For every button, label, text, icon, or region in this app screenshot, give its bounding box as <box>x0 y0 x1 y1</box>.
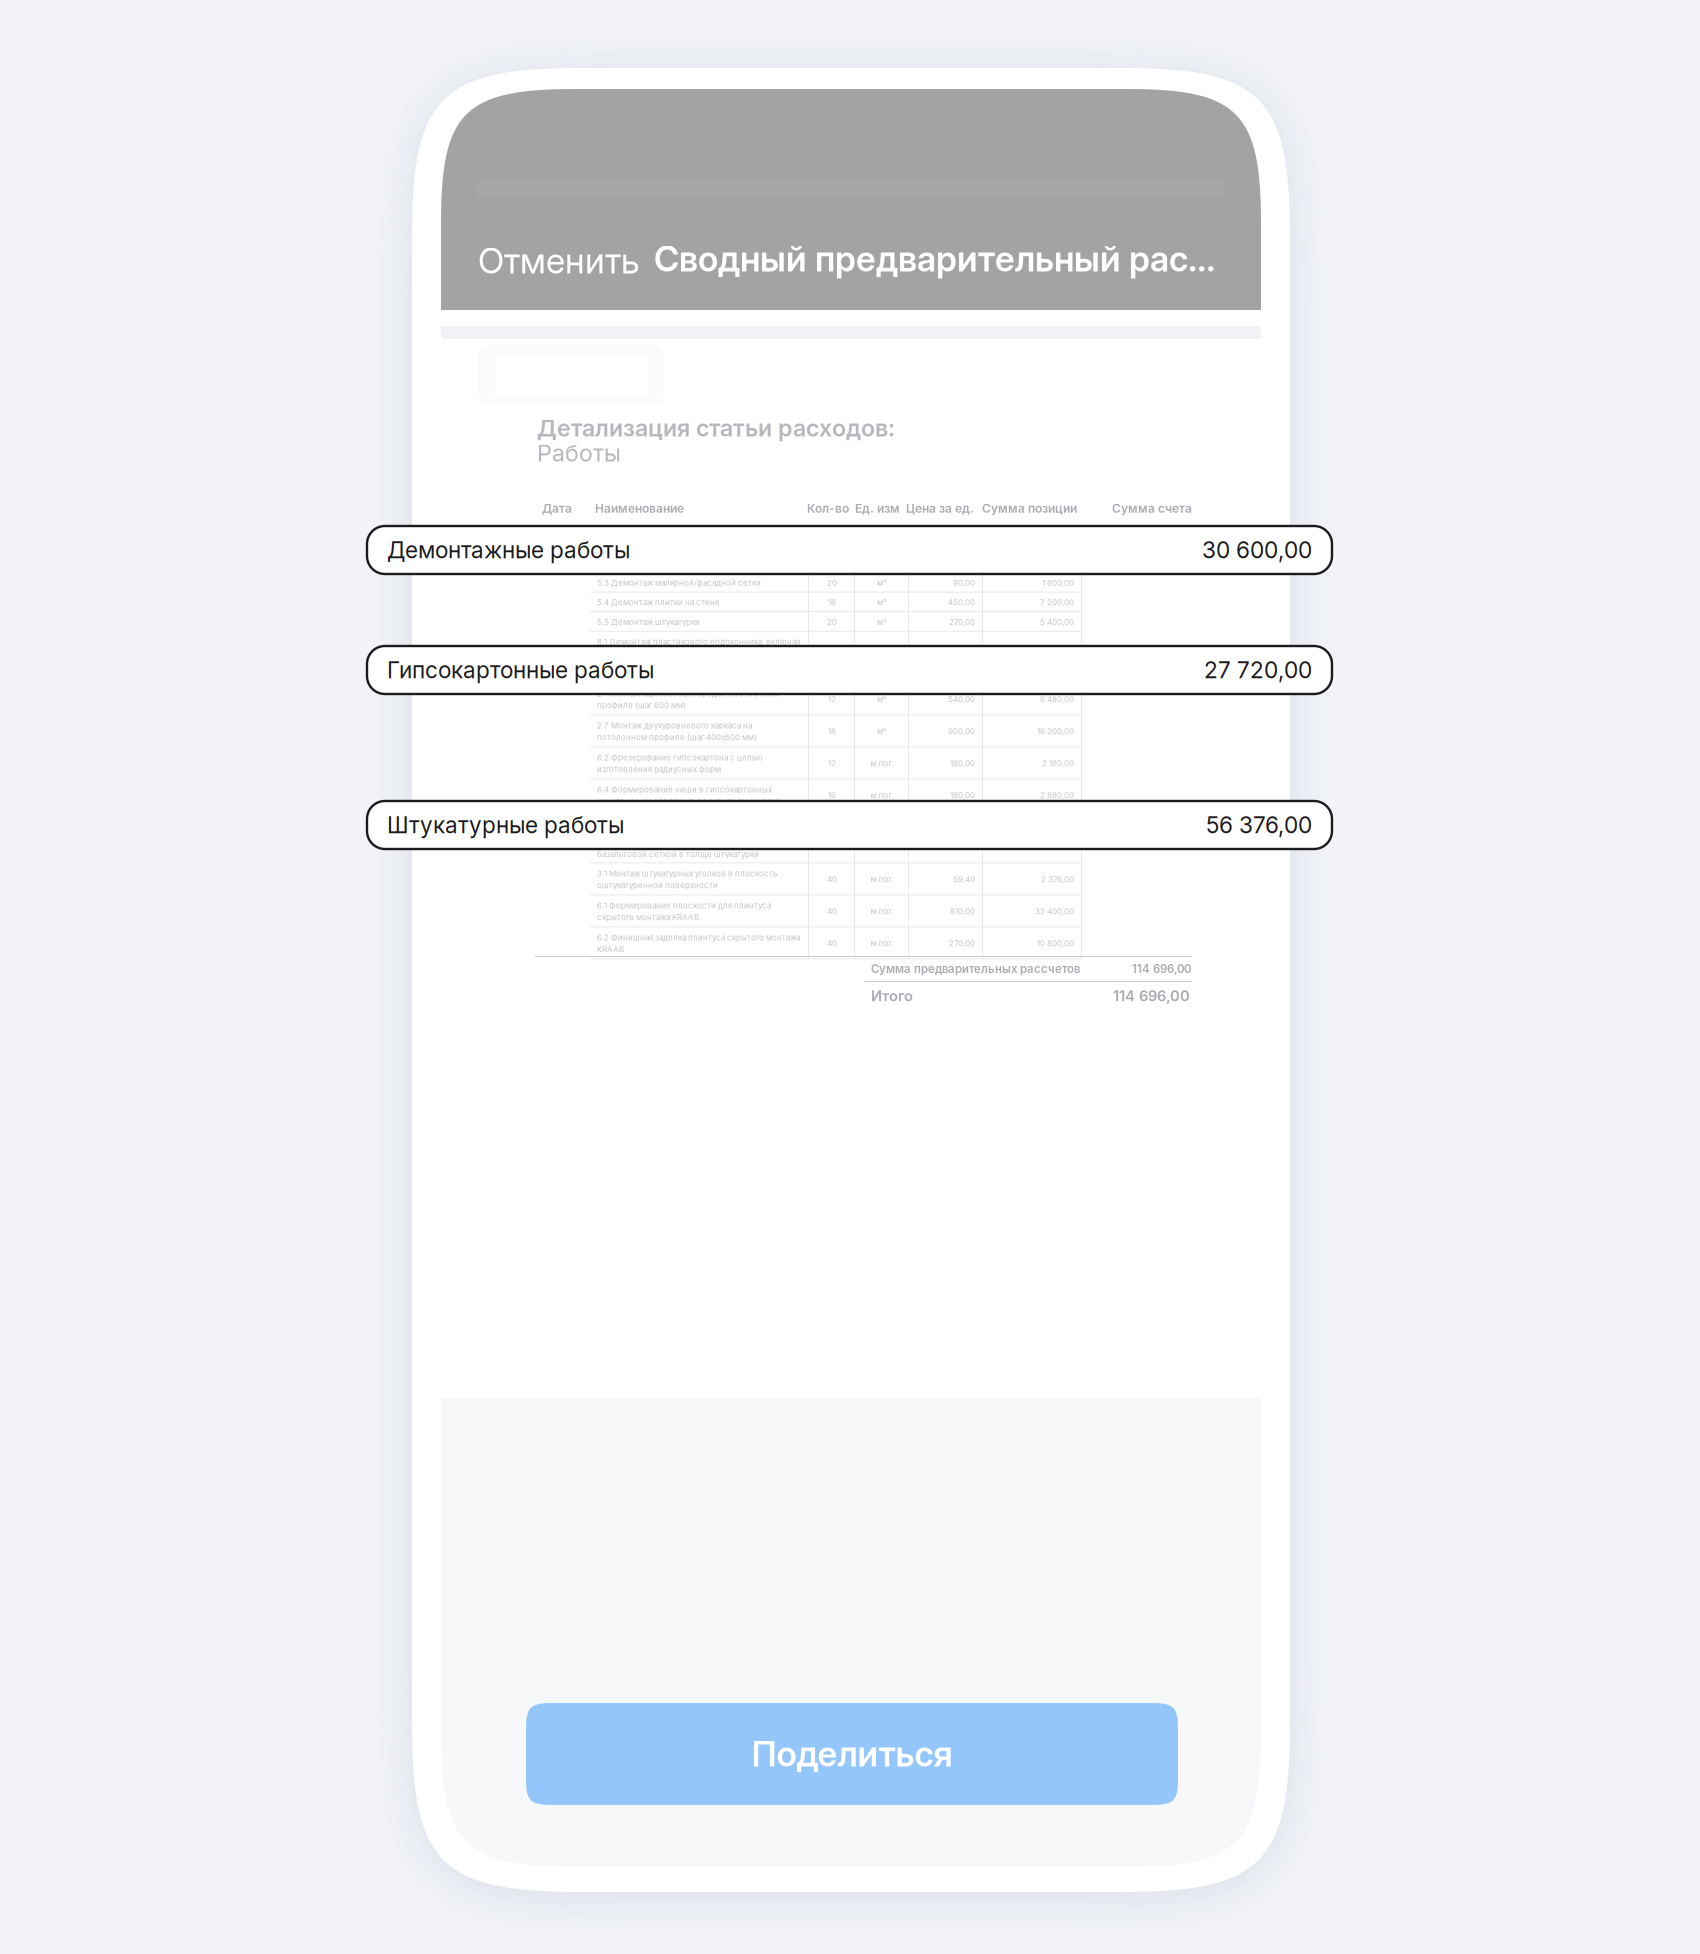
staticText: оштукатуренной поверхности <box>597 880 718 890</box>
button[interactable]: Демонтажные работы <box>367 526 1332 574</box>
staticText: 3 240,00 <box>1040 643 1074 653</box>
staticText: 2.1 Монтаж каркаса перегородок на стоечн… <box>597 689 779 698</box>
staticText: 2 160,00 <box>1042 759 1074 768</box>
staticText: Сводный предварительный рас… <box>654 238 1215 280</box>
staticText: 5.4 Демонтаж плитки на стене <box>597 598 720 607</box>
staticText: KRAAB <box>597 944 624 954</box>
staticText: м² <box>877 578 887 588</box>
staticText: 180,00 <box>950 759 975 768</box>
staticText: Детализация статьи расходов: <box>537 414 895 442</box>
staticText: 56 376,00 <box>1206 811 1312 839</box>
staticText: м.пог. <box>870 907 893 916</box>
staticText: Штукатурные работы <box>387 811 624 839</box>
staticText: 6.4 Формирование ниши в гипсокартонных <box>597 785 772 794</box>
staticText: 114 696,00 <box>1132 962 1191 976</box>
staticText: 18 <box>828 727 836 736</box>
staticText: Сумма счета <box>1112 501 1192 515</box>
staticText: 6 480,00 <box>1040 695 1074 704</box>
staticText: м.пог. <box>870 875 893 884</box>
staticText: 6.2 Финишная заделка плинтуса скрытого м… <box>597 933 800 942</box>
staticText: 40 <box>827 907 837 916</box>
staticText: 20 <box>827 617 837 627</box>
staticText: 16 <box>828 598 836 607</box>
staticText: Кол-во <box>807 501 849 515</box>
staticText: 40 <box>827 939 837 948</box>
staticText: 2.7 Монтаж двухуровневого каркаса на <box>597 721 752 730</box>
staticText: Отменить <box>478 240 640 282</box>
staticText: 6 <box>829 643 834 653</box>
staticText: Демонтажные работы <box>387 536 630 564</box>
staticText: 3.1 Монтаж штукатурных уголков в плоскос… <box>597 869 777 878</box>
button[interactable]: Штукатурные работы <box>367 801 1332 849</box>
staticText: 1 800,00 <box>1042 578 1074 588</box>
staticText: м² <box>877 598 887 607</box>
staticText: 7 200,00 <box>1040 598 1074 607</box>
staticText: 30 600,00 <box>1202 536 1312 564</box>
staticText: 270,00 <box>949 617 975 627</box>
staticText: Поделиться <box>751 1733 952 1775</box>
staticText: м² <box>877 727 887 736</box>
staticText: 16 200,00 <box>1037 727 1074 736</box>
staticText: 270,00 <box>949 939 975 948</box>
staticText: м² <box>877 617 887 627</box>
staticText: 12 <box>828 759 836 768</box>
staticText: Сумма позиции <box>982 501 1077 515</box>
staticText: 90,00 <box>953 578 975 588</box>
staticText: 114 696,00 <box>1113 987 1190 1005</box>
button[interactable]: Гипсокартонные работы <box>367 646 1332 694</box>
staticText: 6.1 Формирование плоскости для плинтуса <box>597 901 771 910</box>
staticText: базальтовой сеткой в толще штукатурки <box>597 849 759 859</box>
staticText: Итого <box>871 987 913 1005</box>
staticText: 2 880,00 <box>1040 791 1074 800</box>
staticText: 180,00 <box>950 791 975 800</box>
staticText: м.пог. <box>870 759 893 768</box>
staticText: 900,00 <box>948 727 975 736</box>
staticText: 6.2 Фрезерование гипсокартона с целью <box>597 753 763 762</box>
staticText: 10 800,00 <box>1037 939 1074 948</box>
staticText: 2 376,00 <box>1041 875 1074 884</box>
staticText: Наименование <box>595 501 684 515</box>
staticText: изготовления радиусных форм <box>597 764 721 774</box>
staticText: 27 720,00 <box>1204 656 1312 684</box>
staticText: 8.1 Демонтаж пластикового подоконника, в… <box>597 637 800 647</box>
staticText: 450,00 <box>948 598 975 607</box>
staticText: 5 400,00 <box>1040 617 1074 627</box>
staticText: конструкциях для плинтуса скрытого монта… <box>597 796 781 806</box>
staticText: 540,00 <box>948 643 975 653</box>
staticText: Сумма предварительных рассчетов <box>871 962 1080 976</box>
staticText: 8.4 Демонтаж подоконной части <box>597 669 729 678</box>
staticText: Дата <box>542 501 572 515</box>
staticText: 5.3 Демонтаж малярной/фасадной сетки <box>597 578 761 588</box>
staticText: 12 <box>828 695 836 704</box>
staticText: 40 <box>827 875 837 884</box>
staticText: профиле (шаг 600 мм) <box>597 700 686 710</box>
button[interactable]: Поделиться <box>526 1703 1178 1805</box>
staticText: 810,00 <box>950 907 975 916</box>
staticText: Работы <box>537 439 621 467</box>
staticText: Цена за ед. <box>906 501 974 515</box>
staticText: 540,00 <box>948 695 975 704</box>
staticText: м.пог. <box>870 939 893 948</box>
staticText: 32 400,00 <box>1035 907 1074 916</box>
staticText: 20 <box>827 578 837 588</box>
staticText: Ед. изм <box>855 501 900 515</box>
staticText: м² <box>877 695 887 704</box>
staticText: Гипсокартонные работы <box>387 656 654 684</box>
staticText: 16 <box>828 791 836 800</box>
staticText: м.пог. <box>870 643 893 653</box>
staticText: потолочном профиле (шаг 400x600 мм) <box>597 732 757 742</box>
staticText: м.пог. <box>870 791 893 800</box>
staticText: скрытого монтажа KRAAB <box>597 912 699 922</box>
staticText: 59,40 <box>953 875 975 884</box>
staticText: 5.5 Демонтаж штукатурки <box>597 617 700 627</box>
